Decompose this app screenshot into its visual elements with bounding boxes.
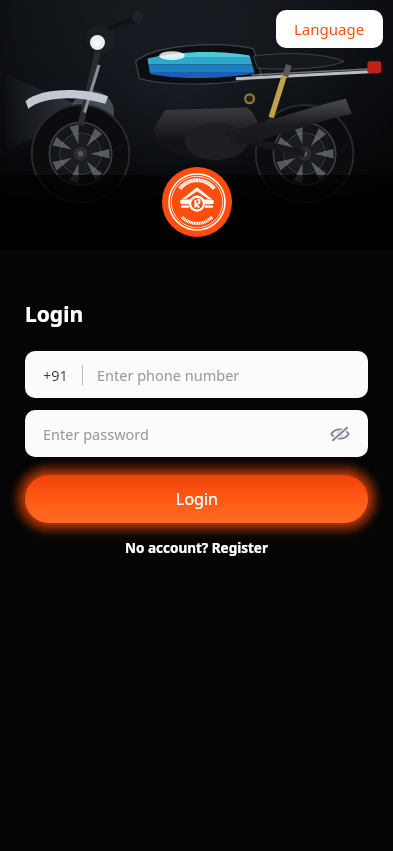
staticText: Login [25,300,84,329]
button[interactable]: Show password [328,422,352,446]
staticText: Language [294,19,365,39]
staticText: +91 [43,365,68,385]
button[interactable]: No account? Register [117,535,276,561]
staticText: No account? Register [125,539,268,557]
staticText: Login [176,488,218,510]
staticText: Enter password [43,424,149,444]
button[interactable]: Login [25,475,368,523]
button[interactable]: +91 [25,351,368,398]
button[interactable]: Language [276,10,383,48]
button[interactable]: Enter password [25,410,368,457]
staticText: Enter phone number [97,365,240,385]
